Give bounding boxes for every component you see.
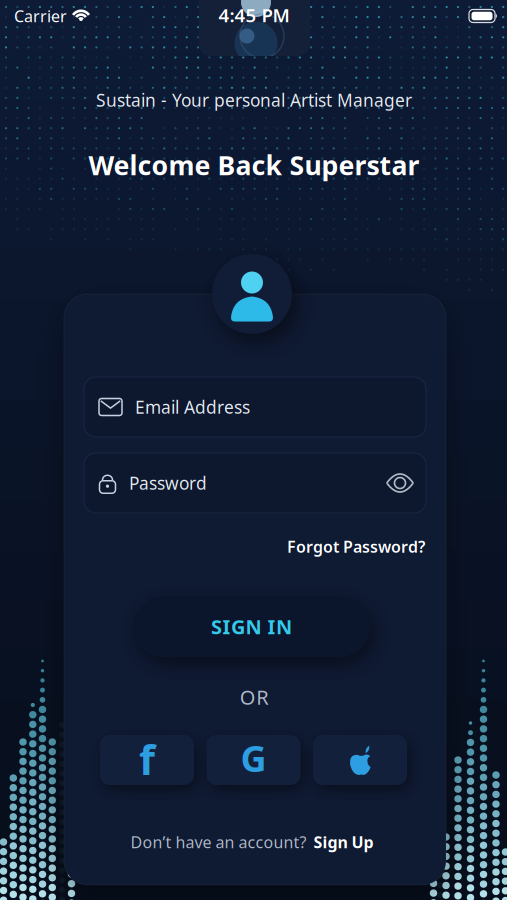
button[interactable]: Sign Up bbox=[313, 831, 373, 853]
staticText: Welcome Back Superstar bbox=[88, 147, 419, 183]
button[interactable]: Sign in with Google bbox=[206, 735, 300, 785]
staticText: Email Address bbox=[135, 395, 250, 418]
staticText: Password bbox=[129, 471, 207, 494]
button[interactable]: Sign in with Apple bbox=[313, 735, 407, 785]
staticText: OR bbox=[240, 684, 268, 710]
staticText: G bbox=[240, 734, 266, 782]
staticText: 4:45 PM bbox=[218, 3, 289, 27]
button[interactable]: Forgot Password? bbox=[287, 536, 425, 557]
staticText: Sustain - Your personal Artist Manager bbox=[96, 88, 412, 111]
button[interactable]: Sign in with Facebook bbox=[100, 735, 194, 785]
staticText: SIGN IN bbox=[211, 613, 292, 640]
staticText: Sign Up bbox=[313, 831, 373, 853]
button[interactable]: Email Address bbox=[84, 377, 426, 437]
button[interactable]: SIGN IN bbox=[133, 596, 370, 657]
staticText: Carrier bbox=[14, 5, 67, 27]
staticText: Don’t have an account? bbox=[130, 831, 306, 853]
staticText: f bbox=[139, 732, 155, 786]
button[interactable]: Password bbox=[84, 453, 426, 513]
button[interactable]: Show password bbox=[386, 472, 414, 494]
staticText: Forgot Password? bbox=[287, 536, 425, 557]
